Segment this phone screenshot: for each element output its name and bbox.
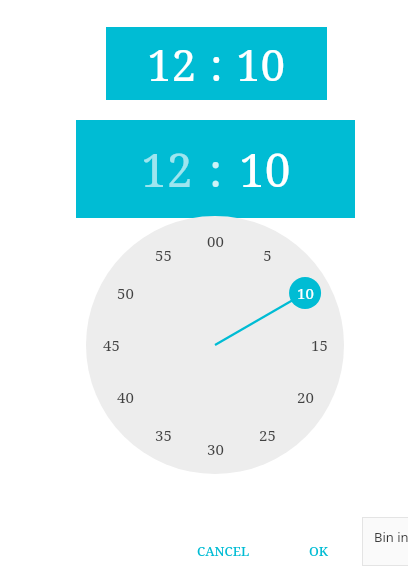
staticText: : bbox=[210, 34, 223, 94]
staticText: 35 bbox=[155, 425, 172, 445]
button[interactable]: 45 bbox=[95, 334, 127, 356]
button[interactable]: Bin in bbox=[362, 517, 408, 566]
staticText: 00 bbox=[207, 231, 224, 251]
button[interactable]: 10 bbox=[239, 138, 291, 201]
staticText: Bin in bbox=[374, 528, 408, 546]
staticText: 15 bbox=[311, 335, 328, 355]
staticText: 40 bbox=[117, 387, 134, 407]
staticText: OK bbox=[309, 542, 329, 560]
button[interactable]: 30 bbox=[199, 438, 231, 460]
staticText: 10 bbox=[297, 283, 314, 303]
button[interactable]: 5 bbox=[251, 244, 283, 266]
staticText: 10 bbox=[239, 138, 291, 201]
staticText: 55 bbox=[155, 245, 172, 265]
staticText: 25 bbox=[259, 425, 276, 445]
staticText: 5 bbox=[263, 245, 272, 265]
button[interactable]: 50 bbox=[109, 282, 141, 304]
staticText: 30 bbox=[207, 439, 224, 459]
button[interactable]: 55 bbox=[147, 244, 179, 266]
staticText: 12 bbox=[147, 34, 197, 94]
button[interactable]: 12 bbox=[141, 138, 193, 201]
staticText: CANCEL bbox=[197, 542, 250, 560]
button[interactable]: 00 bbox=[199, 230, 231, 252]
button[interactable]: 35 bbox=[147, 424, 179, 446]
button[interactable]: 20 bbox=[289, 386, 321, 408]
button[interactable]: 40 bbox=[109, 386, 141, 408]
staticText: 45 bbox=[103, 335, 120, 355]
button[interactable]: CANCEL bbox=[189, 538, 258, 564]
button[interactable]: 10 bbox=[289, 282, 321, 304]
staticText: 12 bbox=[141, 138, 193, 201]
button[interactable]: Clock face minute picker bbox=[76, 218, 355, 524]
button[interactable]: 12 bbox=[106, 27, 327, 100]
button[interactable]: 15 bbox=[303, 334, 335, 356]
button[interactable]: 25 bbox=[251, 424, 283, 446]
button[interactable]: OK bbox=[301, 538, 337, 564]
staticText: 10 bbox=[236, 34, 286, 94]
staticText: 20 bbox=[297, 387, 314, 407]
staticText: : bbox=[209, 138, 223, 201]
staticText: 50 bbox=[117, 283, 134, 303]
